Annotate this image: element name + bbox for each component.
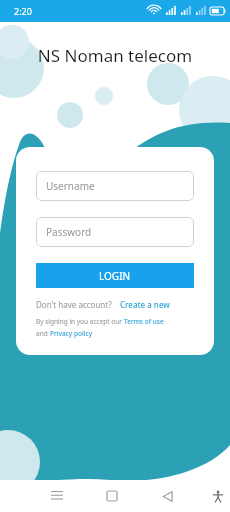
- button[interactable]: LOGIN: [36, 263, 194, 288]
- staticText: Username: [46, 179, 95, 193]
- button[interactable]: Password: [36, 217, 194, 247]
- staticText: 2:20: [14, 5, 32, 17]
- button[interactable]: Accessibility: [206, 483, 230, 509]
- button[interactable]: Home: [99, 483, 125, 509]
- button[interactable]: Privacy policy: [50, 329, 93, 338]
- staticText: LOGIN: [99, 269, 131, 283]
- button[interactable]: Back: [154, 483, 180, 509]
- staticText: Don't have account?: [36, 299, 112, 310]
- button[interactable]: Create a new: [120, 299, 170, 310]
- staticText: Password: [46, 225, 92, 239]
- staticText: By signing in you accept our: [36, 317, 124, 326]
- staticText: Create a new: [120, 299, 170, 310]
- button[interactable]: Username: [36, 171, 194, 201]
- staticText: NS Noman telecom: [0, 44, 230, 67]
- staticText: Privacy policy: [50, 329, 93, 338]
- staticText: Terms of use: [124, 317, 164, 326]
- button[interactable]: Terms of use: [124, 317, 164, 326]
- button[interactable]: Recent apps: [44, 483, 70, 509]
- staticText: and: [36, 329, 50, 338]
